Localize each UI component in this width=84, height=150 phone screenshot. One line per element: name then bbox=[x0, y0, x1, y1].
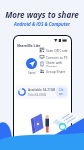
button[interactable]: Clean bbox=[59, 88, 64, 96]
staticText: ShareMe Lite bbox=[17, 43, 41, 48]
staticText: More ways to share bbox=[5, 9, 79, 20]
staticText: Share with Xiaomi bbox=[46, 60, 70, 67]
staticText: Send bbox=[28, 71, 36, 75]
button[interactable]: Send bbox=[26, 58, 37, 69]
button[interactable]: Connect to PC bbox=[40, 53, 70, 60]
button[interactable]: Scan QR Code bbox=[40, 46, 70, 53]
button[interactable]: Share with Xiaomi bbox=[40, 60, 70, 67]
staticText: Group Share bbox=[46, 69, 66, 73]
staticText: Connect to PC bbox=[46, 55, 68, 59]
staticText: Available 54.21GB bbox=[28, 88, 56, 92]
button[interactable]: Available 54.21GB bbox=[16, 85, 69, 99]
staticText: Scan QR Code bbox=[46, 48, 68, 52]
staticText: Clean bbox=[59, 88, 64, 96]
button[interactable]: Group Share bbox=[40, 67, 70, 74]
staticText: Total 64.00GB bbox=[28, 93, 47, 97]
staticText: Android & iOS & Computer bbox=[14, 21, 70, 27]
